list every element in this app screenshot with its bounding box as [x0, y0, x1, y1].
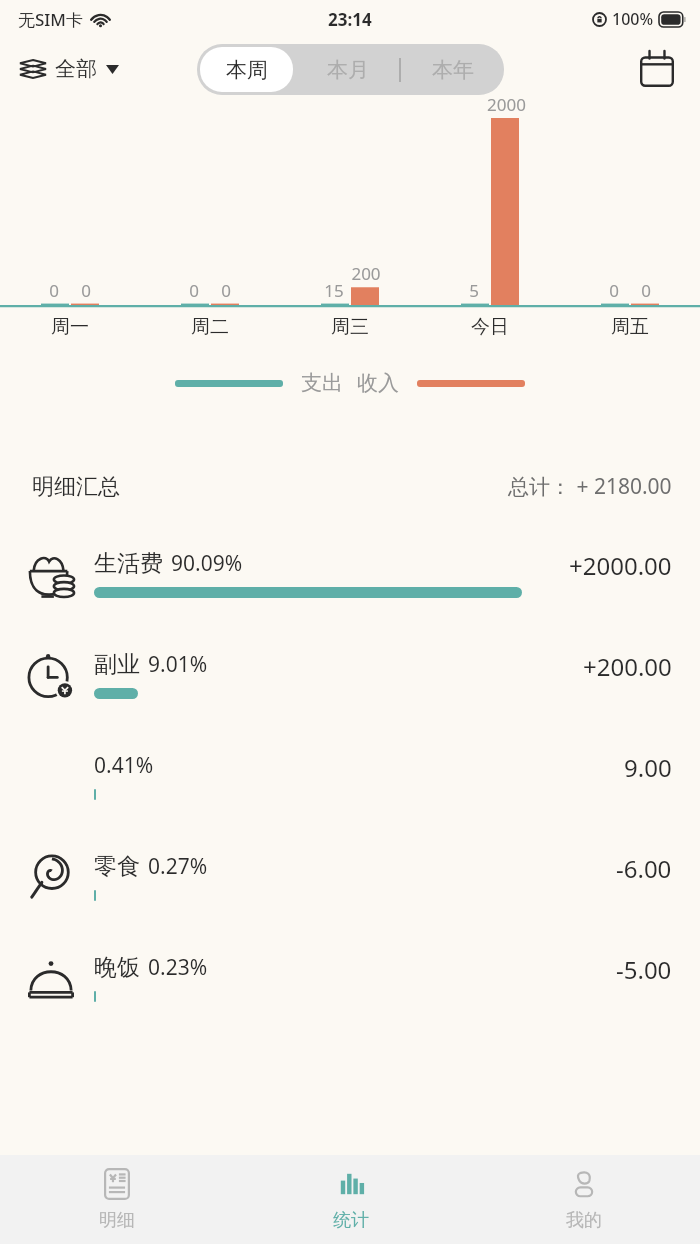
staticText: +2000.00 [569, 549, 672, 582]
staticText: 0 [81, 279, 91, 302]
staticText: 晚饭 [94, 953, 140, 982]
button[interactable]: 统计 [234, 1155, 467, 1244]
staticText: 本年 [432, 57, 474, 83]
staticText: 9.00 [624, 751, 672, 784]
staticText: 统计 [333, 1209, 369, 1232]
button[interactable]: Select month [636, 48, 678, 90]
staticText: 周二 [191, 315, 229, 339]
staticText: 0.27% [148, 852, 208, 881]
staticText: 0 [49, 279, 59, 302]
staticText: 周一 [51, 315, 89, 339]
button[interactable]: 我的 [467, 1155, 700, 1244]
staticText: 23:14 [328, 8, 372, 31]
button[interactable]: 副业 [0, 638, 700, 739]
staticText: 周五 [611, 315, 649, 339]
staticText: 无SIM卡 [18, 8, 83, 31]
button[interactable]: 0.41% [0, 739, 700, 840]
staticText: 90.09% [171, 549, 243, 578]
button[interactable]: 本月 [296, 44, 399, 95]
staticText: -6.00 [616, 852, 672, 885]
staticText: 0 [221, 279, 231, 302]
staticText: +200.00 [583, 650, 672, 683]
staticText: 2000 [487, 93, 526, 116]
staticText: 总计： + 2180.00 [508, 472, 672, 501]
staticText: 0 [609, 279, 619, 302]
staticText: 我的 [566, 1209, 602, 1232]
staticText: 明细汇总 [32, 473, 120, 501]
button[interactable]: 晚饭 [0, 941, 700, 1042]
staticText: 0 [641, 279, 651, 302]
staticText: -5.00 [616, 953, 672, 986]
staticText: 支出 [301, 370, 343, 396]
button[interactable]: 本年 [401, 44, 504, 95]
staticText: 生活费 [94, 549, 163, 578]
staticText: 收入 [357, 370, 399, 396]
button[interactable]: 生活费 [0, 537, 700, 638]
staticText: 周三 [331, 315, 369, 339]
button[interactable]: 本周 [197, 44, 296, 95]
staticText: 5 [469, 279, 479, 302]
staticText: 明细 [99, 1209, 135, 1232]
button[interactable]: 全部 [20, 56, 119, 82]
staticText: 200 [351, 262, 381, 285]
button[interactable]: 明细 [0, 1155, 234, 1244]
staticText: 全部 [55, 56, 97, 82]
staticText: 15 [324, 279, 344, 302]
staticText: 0 [189, 279, 199, 302]
staticText: 本周 [226, 57, 268, 83]
button[interactable]: 零食 [0, 840, 700, 941]
staticText: 零食 [94, 852, 140, 881]
staticText: 100% [612, 8, 654, 30]
staticText: 9.01% [148, 650, 208, 679]
staticText: 今日 [471, 315, 509, 339]
staticText: 0.41% [94, 751, 154, 780]
staticText: 副业 [94, 650, 140, 679]
staticText: 本月 [327, 57, 369, 83]
staticText: 0.23% [148, 953, 208, 982]
